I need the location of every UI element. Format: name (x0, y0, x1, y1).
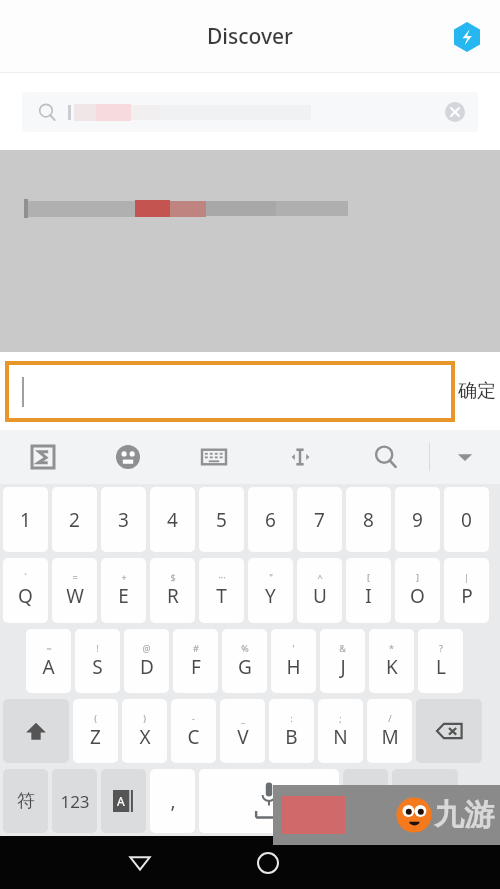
button[interactable]: ! (75, 629, 120, 693)
staticText: _ (241, 712, 245, 724)
button[interactable]: @ (124, 629, 169, 693)
button[interactable]: 符 (3, 769, 48, 833)
button[interactable]: 1 (3, 487, 48, 552)
staticText: ` (24, 571, 27, 583)
button[interactable]: % (222, 629, 267, 693)
button[interactable]: Boost (450, 20, 484, 54)
staticText: J (340, 654, 346, 680)
button[interactable]: Collapse (430, 430, 500, 484)
button[interactable]: ^ (297, 558, 342, 623)
button[interactable]: Back (118, 841, 162, 885)
staticText: 8 (363, 507, 374, 533)
staticText: 1 (20, 507, 31, 533)
button[interactable]: * (369, 629, 414, 693)
button[interactable]: 3 (101, 487, 146, 552)
button[interactable]: " (248, 558, 293, 623)
staticText: P (461, 583, 473, 609)
staticText: V (237, 724, 249, 750)
button[interactable]: | (444, 558, 489, 623)
staticText: 4 (167, 507, 178, 533)
staticText: S (92, 654, 103, 680)
staticText: K (386, 654, 398, 680)
button[interactable]: $ (150, 558, 195, 623)
staticText: E (118, 583, 129, 609)
button[interactable]: ] (395, 558, 440, 623)
staticText: B (285, 724, 298, 750)
button[interactable] (392, 769, 458, 833)
button[interactable]: , (150, 769, 195, 833)
staticText: L (436, 654, 446, 680)
button[interactable]: = (52, 558, 97, 623)
button[interactable]: # (173, 629, 218, 693)
staticText: Q (18, 583, 33, 609)
button[interactable]: 5 (199, 487, 244, 552)
staticText: $ (170, 571, 176, 583)
button[interactable]: ; (318, 699, 363, 763)
button[interactable]: 中/英 (343, 769, 388, 833)
button[interactable]: 4 (150, 487, 195, 552)
button[interactable]: 7 (297, 487, 342, 552)
staticText: # (193, 642, 199, 654)
button[interactable]: 8 (346, 487, 391, 552)
staticText: O (410, 583, 425, 609)
staticText: : (290, 712, 293, 724)
button[interactable]: Clear (22, 92, 478, 132)
button[interactable]: Clear (442, 99, 468, 125)
button[interactable]: ~ (26, 629, 71, 693)
staticText: C (187, 724, 200, 750)
staticText: ^ (317, 571, 323, 583)
button[interactable]: 2 (52, 487, 97, 552)
button[interactable]: ' (271, 629, 316, 693)
staticText: 0 (461, 507, 472, 533)
staticText: & (339, 642, 346, 654)
staticText: ( (94, 712, 97, 724)
staticText: ; (339, 712, 342, 724)
button[interactable]: ) (122, 699, 167, 763)
staticText: 9 (412, 507, 423, 533)
staticText: 6 (265, 507, 276, 533)
button[interactable] (416, 699, 482, 763)
button[interactable]: & (320, 629, 365, 693)
button[interactable]: cursor (257, 430, 343, 484)
staticText: Y (265, 583, 276, 609)
button[interactable]: 6 (248, 487, 293, 552)
staticText: A (117, 793, 125, 809)
button[interactable]: ( (73, 699, 118, 763)
button[interactable] (6, 362, 454, 421)
staticText: 符 (17, 790, 35, 813)
button[interactable]: ` (3, 558, 48, 623)
staticText: / (388, 712, 392, 724)
button[interactable]: : (269, 699, 314, 763)
button[interactable]: ? (418, 629, 463, 693)
button[interactable]: + (101, 558, 146, 623)
staticText: G (238, 654, 252, 680)
staticText: | (464, 571, 469, 583)
staticText: 九游 (434, 796, 494, 834)
button[interactable]: Home (246, 841, 290, 885)
button[interactable] (3, 699, 69, 763)
staticText: F (191, 654, 201, 680)
button[interactable]: search (343, 430, 429, 484)
staticText: ] (416, 571, 419, 583)
button[interactable]: 9 (395, 487, 440, 552)
button[interactable]: Space (199, 769, 339, 833)
staticText: ~ (46, 642, 52, 654)
staticText: Z (90, 724, 101, 750)
staticText: 123 (60, 790, 90, 813)
button[interactable]: ··· (199, 558, 244, 623)
button[interactable]: kb (171, 430, 257, 484)
staticText: 2 (69, 507, 80, 533)
button[interactable]: / (367, 699, 412, 763)
staticText: R (167, 583, 179, 609)
button[interactable]: sogou (0, 430, 85, 484)
button[interactable]: 确定 (458, 379, 496, 403)
button[interactable]: emoji (85, 430, 171, 484)
button[interactable]: _ (220, 699, 265, 763)
button[interactable]: - (171, 699, 216, 763)
button[interactable]: [ (346, 558, 391, 623)
button[interactable]: 0 (444, 487, 489, 552)
staticText: N (333, 724, 348, 750)
button[interactable]: 123 (52, 769, 97, 833)
button[interactable]: A (101, 769, 146, 833)
staticText: * (389, 642, 394, 654)
